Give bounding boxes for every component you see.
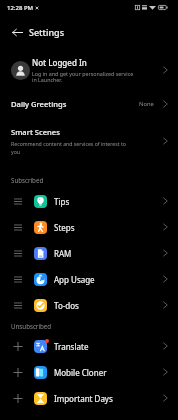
button[interactable]: Not Logged In <box>0 49 178 91</box>
staticText: 12:28 PM <box>7 4 34 12</box>
staticText: Settings <box>29 26 65 38</box>
staticText: Important Days <box>54 393 162 404</box>
button[interactable]: Steps <box>0 214 178 240</box>
staticText: Not Logged In <box>32 57 87 68</box>
button[interactable]: Daily Greetings <box>0 91 178 117</box>
button[interactable]: To-dos <box>0 292 178 318</box>
button[interactable]: Mobile Cloner <box>0 359 178 385</box>
staticText: Mobile Cloner <box>54 367 162 378</box>
staticText: Subscribed <box>11 176 44 184</box>
button[interactable]: App Usage <box>0 266 178 292</box>
staticText: Log in and get your personalized service… <box>32 70 136 83</box>
staticText: App Usage <box>54 274 162 285</box>
staticText: Steps <box>54 222 162 233</box>
button[interactable]: Back <box>7 22 28 43</box>
staticText: None <box>139 100 154 108</box>
staticText: To-dos <box>54 300 162 311</box>
button[interactable]: Important Days <box>0 385 178 411</box>
button[interactable]: RAM <box>0 240 178 266</box>
button[interactable]: Tips <box>0 188 178 214</box>
button[interactable]: Smart Scenes <box>0 117 178 164</box>
staticText: Daily Greetings <box>11 99 139 109</box>
staticText: Translate <box>54 341 162 352</box>
staticText: Smart Scenes <box>11 127 60 137</box>
button[interactable]: Translate <box>0 333 178 359</box>
staticText: RAM <box>54 248 162 259</box>
staticText: Recommend content and services of intere… <box>11 140 131 155</box>
staticText: Unsubscribed <box>11 322 52 330</box>
staticText: Tips <box>54 196 162 207</box>
